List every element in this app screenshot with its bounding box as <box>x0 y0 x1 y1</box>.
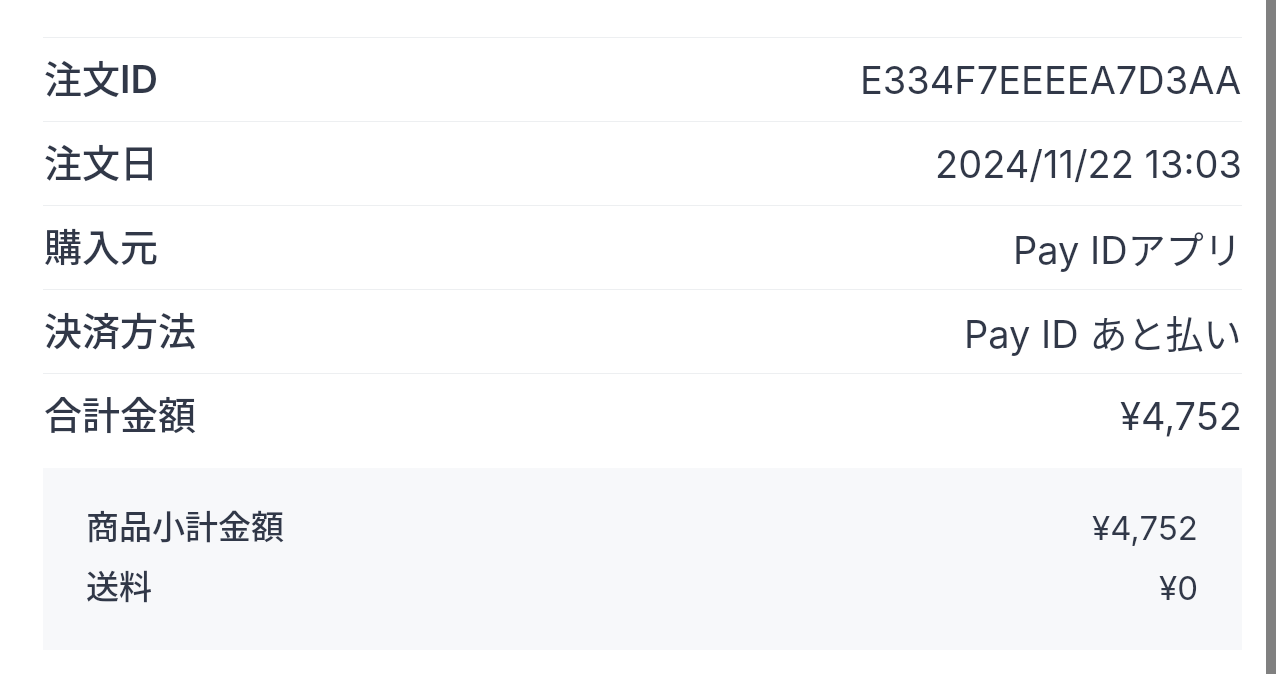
staticText: 合計金額 <box>44 385 197 440</box>
staticText: 商品小計金額 <box>86 501 284 549</box>
button[interactable]: 決済方法 <box>43 290 1242 373</box>
button[interactable]: 合計金額 <box>43 374 1242 457</box>
button[interactable]: 注文ID <box>43 38 1242 121</box>
staticText: 注文日 <box>44 133 159 188</box>
staticText: E334F7EEEEA7D3AA <box>860 57 1242 103</box>
staticText: Pay IDアプリ <box>1013 220 1242 275</box>
staticText: 2024/11/22 13:03 <box>935 141 1242 187</box>
staticText: ¥4,752 <box>1092 508 1198 548</box>
staticText: ¥0 <box>1159 568 1198 608</box>
button[interactable]: 送料 <box>86 558 1198 618</box>
button[interactable]: 注文日 <box>43 122 1242 205</box>
button[interactable]: 商品小計金額 <box>86 498 1198 558</box>
staticText: ¥4,752 <box>1120 393 1242 439</box>
staticText: 送料 <box>86 561 152 609</box>
staticText: Pay ID あと払い <box>964 304 1242 359</box>
staticText: 注文ID <box>44 49 158 104</box>
staticText: 決済方法 <box>44 301 197 356</box>
button[interactable]: 購入元 <box>43 206 1242 289</box>
staticText: 購入元 <box>44 217 159 272</box>
